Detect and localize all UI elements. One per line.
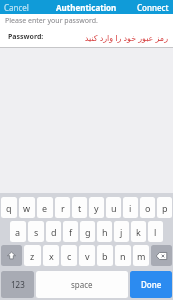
staticText: c [67,250,72,262]
staticText: o [145,202,151,214]
staticText: j [120,226,123,238]
button[interactable]: t [72,197,87,218]
staticText: h [102,226,108,238]
staticText: 123 [11,279,25,290]
button[interactable]: Password: [0,27,173,47]
staticText: r [61,202,65,214]
staticText: q [6,202,12,214]
button[interactable]: l [148,221,163,242]
button[interactable]: space [36,271,128,298]
button[interactable]: m [133,245,149,266]
staticText: رمز عبور خود را وارد کنید [48,32,168,43]
button[interactable]: n [115,245,131,266]
staticText: a [15,226,21,238]
button[interactable]: u [106,197,121,218]
button[interactable]: i [123,197,138,218]
staticText: i [129,202,132,214]
button[interactable]: h [97,221,112,242]
staticText: space [71,279,93,290]
button[interactable]: Connect [137,2,169,13]
staticText: f [69,226,73,238]
button[interactable]: j [114,221,129,242]
staticText: w [23,202,31,214]
button[interactable]: z [24,245,41,266]
staticText: z [30,250,35,262]
button[interactable]: s [28,221,44,242]
staticText: x [49,250,54,262]
button[interactable]: e [37,197,53,218]
staticText: b [102,250,108,262]
button[interactable]: f [63,221,78,242]
button[interactable]: v [79,245,95,266]
button[interactable]: a [10,221,26,242]
staticText: g [85,226,91,238]
staticText: Authentication [56,2,117,13]
button[interactable]: q [1,197,17,218]
button[interactable]: b [97,245,113,266]
staticText: l [154,226,157,238]
staticText: u [111,202,117,214]
button[interactable]: d [46,221,61,242]
button[interactable]: y [89,197,104,218]
staticText: t [78,202,82,214]
staticText: Password: [8,32,44,42]
button[interactable]: 123 [1,271,34,298]
button[interactable]: w [19,197,35,218]
button[interactable]: p [157,197,172,218]
staticText: s [34,226,39,238]
button[interactable]: r [55,197,70,218]
staticText: d [51,226,57,238]
staticText: y [94,202,99,214]
staticText: v [85,250,90,262]
staticText: n [120,250,126,262]
button[interactable]: g [80,221,95,242]
button[interactable]: Done [130,271,172,298]
button[interactable]: c [61,245,77,266]
staticText: p [162,202,168,214]
staticText: e [42,202,48,214]
staticText: m [137,250,146,262]
button[interactable]: x [43,245,59,266]
staticText: Connect [137,2,169,13]
button[interactable]: Backspace [151,245,172,266]
staticText: Please enter your password. [5,16,98,26]
staticText: Cancel [4,2,29,13]
button[interactable]: o [140,197,155,218]
button[interactable]: Cancel [4,2,29,13]
button[interactable]: Shift [1,245,22,266]
staticText: k [136,226,141,238]
button[interactable]: k [131,221,146,242]
staticText: Done [141,279,162,290]
